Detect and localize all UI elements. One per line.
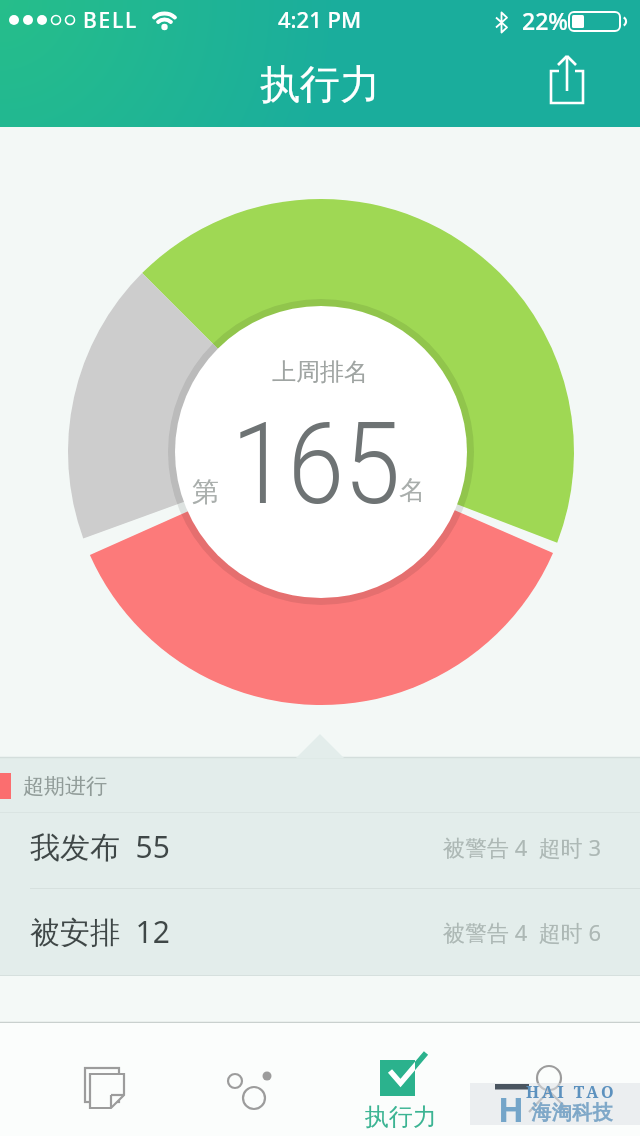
button[interactable] xyxy=(490,1023,610,1136)
staticText: 165 xyxy=(231,397,400,531)
button[interactable] xyxy=(340,1023,460,1136)
button[interactable] xyxy=(43,1023,163,1136)
button[interactable] xyxy=(541,47,593,113)
button[interactable] xyxy=(0,889,640,975)
staticText: 第 xyxy=(192,475,219,509)
staticText: 被警告 4 超时 6 xyxy=(443,917,602,947)
staticText: 4:21 PM xyxy=(278,4,362,34)
staticText: 上周排名 xyxy=(272,357,368,387)
staticText: 执行力 xyxy=(365,1102,437,1132)
staticText: BELL xyxy=(83,6,139,35)
staticText: 被安排 12 xyxy=(30,911,170,952)
staticText: 被警告 4 超时 3 xyxy=(443,832,602,862)
staticText: 22% xyxy=(522,5,568,36)
staticText: H xyxy=(498,1086,525,1132)
staticText: 执行力 xyxy=(260,59,380,109)
staticText: HAI TAO xyxy=(526,1081,617,1103)
staticText: 超期进行 xyxy=(23,773,107,799)
staticText: 名 xyxy=(399,474,425,507)
staticText: 我发布 55 xyxy=(30,826,170,867)
button[interactable] xyxy=(0,813,640,888)
staticText: 海淘科技 xyxy=(531,1100,613,1125)
button[interactable] xyxy=(190,1023,310,1136)
